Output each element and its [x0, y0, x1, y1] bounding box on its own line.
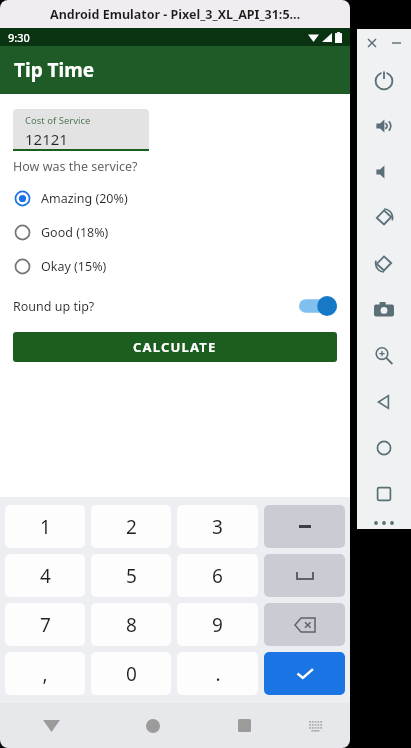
button[interactable]: 4 [5, 554, 85, 597]
button[interactable]: 2 [91, 505, 171, 548]
staticText: 7 [40, 612, 51, 638]
button[interactable]: Amazing (20%) [13, 187, 337, 209]
staticText: Android Emulator - Pixel_3_XL_API_31:5… [50, 6, 301, 23]
staticText: Amazing (20%) [41, 190, 128, 207]
button[interactable]: Enter [264, 652, 345, 695]
staticText: Good (18%) [41, 224, 109, 241]
button[interactable]: More [364, 517, 404, 529]
button[interactable]: Recents [204, 703, 285, 748]
button[interactable]: 9 [177, 603, 258, 646]
button[interactable]: , [5, 652, 85, 695]
button[interactable]: 3 [177, 505, 258, 548]
button[interactable]: 8 [91, 603, 171, 646]
button[interactable]: Okay (15%) [13, 255, 337, 277]
button[interactable]: Close [363, 34, 381, 52]
staticText: 1 [40, 514, 51, 540]
button[interactable]: Rotate left [361, 195, 407, 241]
staticText: 2 [126, 514, 137, 540]
staticText: 0 [126, 661, 137, 687]
button[interactable]: Volume down [361, 149, 407, 195]
button[interactable]: Good (18%) [13, 221, 337, 243]
staticText: 4 [40, 563, 51, 589]
button[interactable]: CALCULATE [13, 332, 337, 362]
staticText: Round up tip? [13, 298, 95, 315]
button[interactable]: 7 [5, 603, 85, 646]
button[interactable]: Back [361, 379, 407, 425]
staticText: 9 [212, 612, 223, 638]
button[interactable]: Keyboard [285, 703, 346, 748]
button[interactable]: Round up tip? [13, 291, 337, 321]
button[interactable]: Back [0, 703, 102, 748]
staticText: Cost of Service [25, 114, 91, 127]
button[interactable]: Delete [264, 603, 345, 646]
button[interactable]: Rotate right [361, 241, 407, 287]
button[interactable]: 5 [91, 554, 171, 597]
staticText: . [215, 661, 221, 687]
staticText: 9:30 [8, 30, 30, 45]
button[interactable]: Space [264, 554, 345, 597]
staticText: 6 [212, 563, 223, 589]
button[interactable]: Overview [361, 471, 407, 517]
button[interactable]: . [177, 652, 258, 695]
staticText: , [42, 661, 48, 687]
button[interactable]: Cost of Service [13, 109, 149, 151]
button[interactable]: Zoom [361, 333, 407, 379]
staticText: Tip Time [14, 57, 95, 83]
button[interactable]: Home [102, 703, 204, 748]
staticText: 5 [126, 563, 137, 589]
staticText: 12121 [25, 129, 68, 149]
button[interactable]: Power [361, 57, 407, 103]
button[interactable]: Screenshot [361, 287, 407, 333]
button[interactable]: 0 [91, 652, 171, 695]
staticText: 8 [126, 612, 137, 638]
button[interactable]: 6 [177, 554, 258, 597]
staticText: How was the service? [13, 158, 138, 175]
staticText: CALCULATE [133, 338, 217, 356]
staticText: Okay (15%) [41, 258, 107, 275]
button[interactable]: 1 [5, 505, 85, 548]
button[interactable]: Minimize [387, 34, 405, 52]
button[interactable]: Home [361, 425, 407, 471]
button[interactable]: Minus [264, 505, 345, 548]
staticText: 3 [212, 514, 223, 540]
button[interactable]: Volume up [361, 103, 407, 149]
